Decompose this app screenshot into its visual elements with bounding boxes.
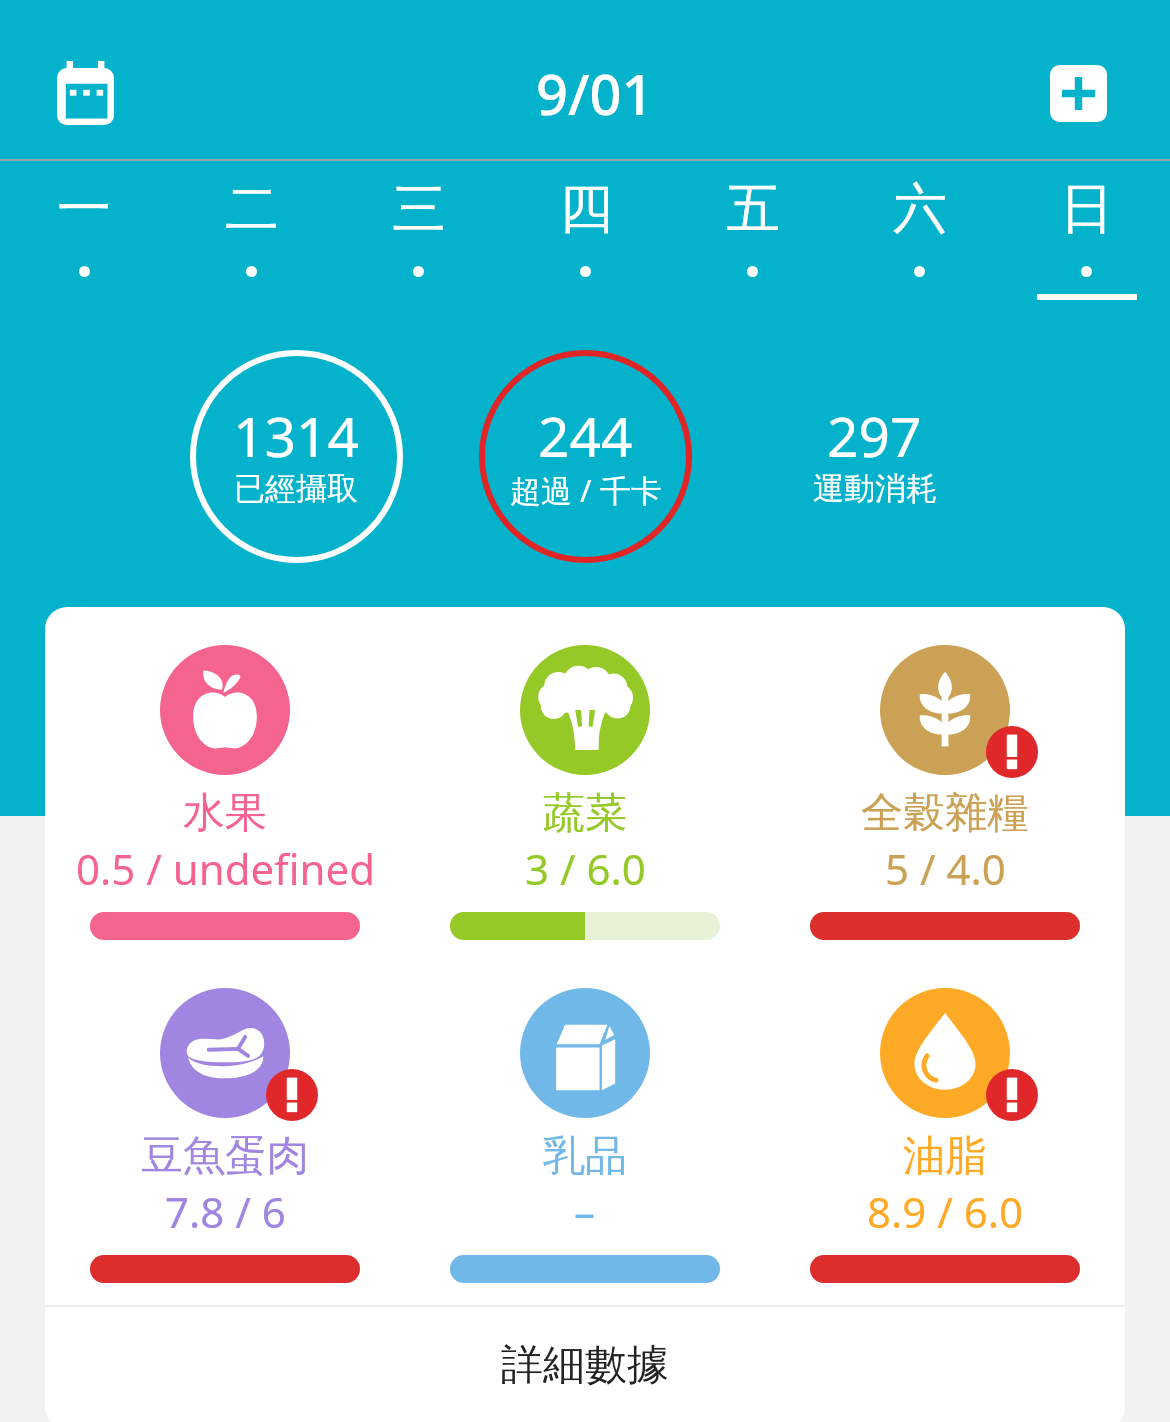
staticText: 豆魚蛋肉	[141, 1130, 309, 1183]
staticText: 297	[827, 398, 922, 473]
staticText: 244	[538, 398, 633, 473]
button[interactable]: 詳細數據	[45, 1307, 1125, 1422]
button[interactable]: 三	[335, 157, 502, 312]
staticText: 0.5 / undefined	[76, 840, 375, 897]
staticText: 二	[225, 175, 279, 243]
staticText: 運動消耗	[813, 469, 937, 508]
staticText: 乳品	[543, 1130, 627, 1183]
button[interactable]: 豆魚蛋肉	[45, 950, 405, 1293]
button[interactable]: 244	[441, 312, 730, 612]
button[interactable]: 一	[0, 157, 168, 312]
button[interactable]: 五	[669, 157, 836, 312]
staticText: 日	[1060, 175, 1114, 243]
button[interactable]: 水果	[45, 607, 405, 950]
staticText: 蔬菜	[543, 787, 627, 840]
button[interactable]: 六	[836, 157, 1003, 312]
button[interactable]: 全穀雜糧	[765, 607, 1125, 950]
staticText: 三	[392, 175, 446, 243]
staticText: 全穀雜糧	[861, 787, 1029, 840]
staticText: 水果	[183, 787, 267, 840]
staticText: 7.8 / 6	[165, 1183, 286, 1240]
button[interactable]: 297	[730, 312, 1019, 612]
staticText: 已經攝取	[234, 469, 358, 508]
button[interactable]: 日	[1003, 157, 1170, 312]
staticText: –	[574, 1183, 596, 1240]
button[interactable]: 油脂	[765, 950, 1125, 1293]
staticText: 五	[726, 175, 780, 243]
staticText: 3 / 6.0	[525, 840, 646, 897]
button[interactable]: 1314	[151, 312, 441, 612]
staticText: 油脂	[903, 1130, 987, 1183]
button[interactable]: Add	[1021, 36, 1135, 150]
button[interactable]: 四	[502, 157, 669, 312]
staticText: 5 / 4.0	[885, 840, 1006, 897]
staticText: 一	[57, 175, 111, 243]
staticText: 四	[559, 175, 613, 243]
staticText: 超過 / 千卡	[510, 469, 662, 511]
staticText: 9/01	[536, 55, 654, 131]
button[interactable]: 乳品	[405, 950, 765, 1293]
button[interactable]: Calendar	[28, 36, 142, 150]
button[interactable]: 二	[168, 157, 335, 312]
staticText: 六	[893, 175, 947, 243]
staticText: 8.9 / 6.0	[867, 1183, 1024, 1240]
staticText: 1314	[233, 398, 359, 473]
staticText: 詳細數據	[501, 1339, 669, 1392]
button[interactable]: 蔬菜	[405, 607, 765, 950]
